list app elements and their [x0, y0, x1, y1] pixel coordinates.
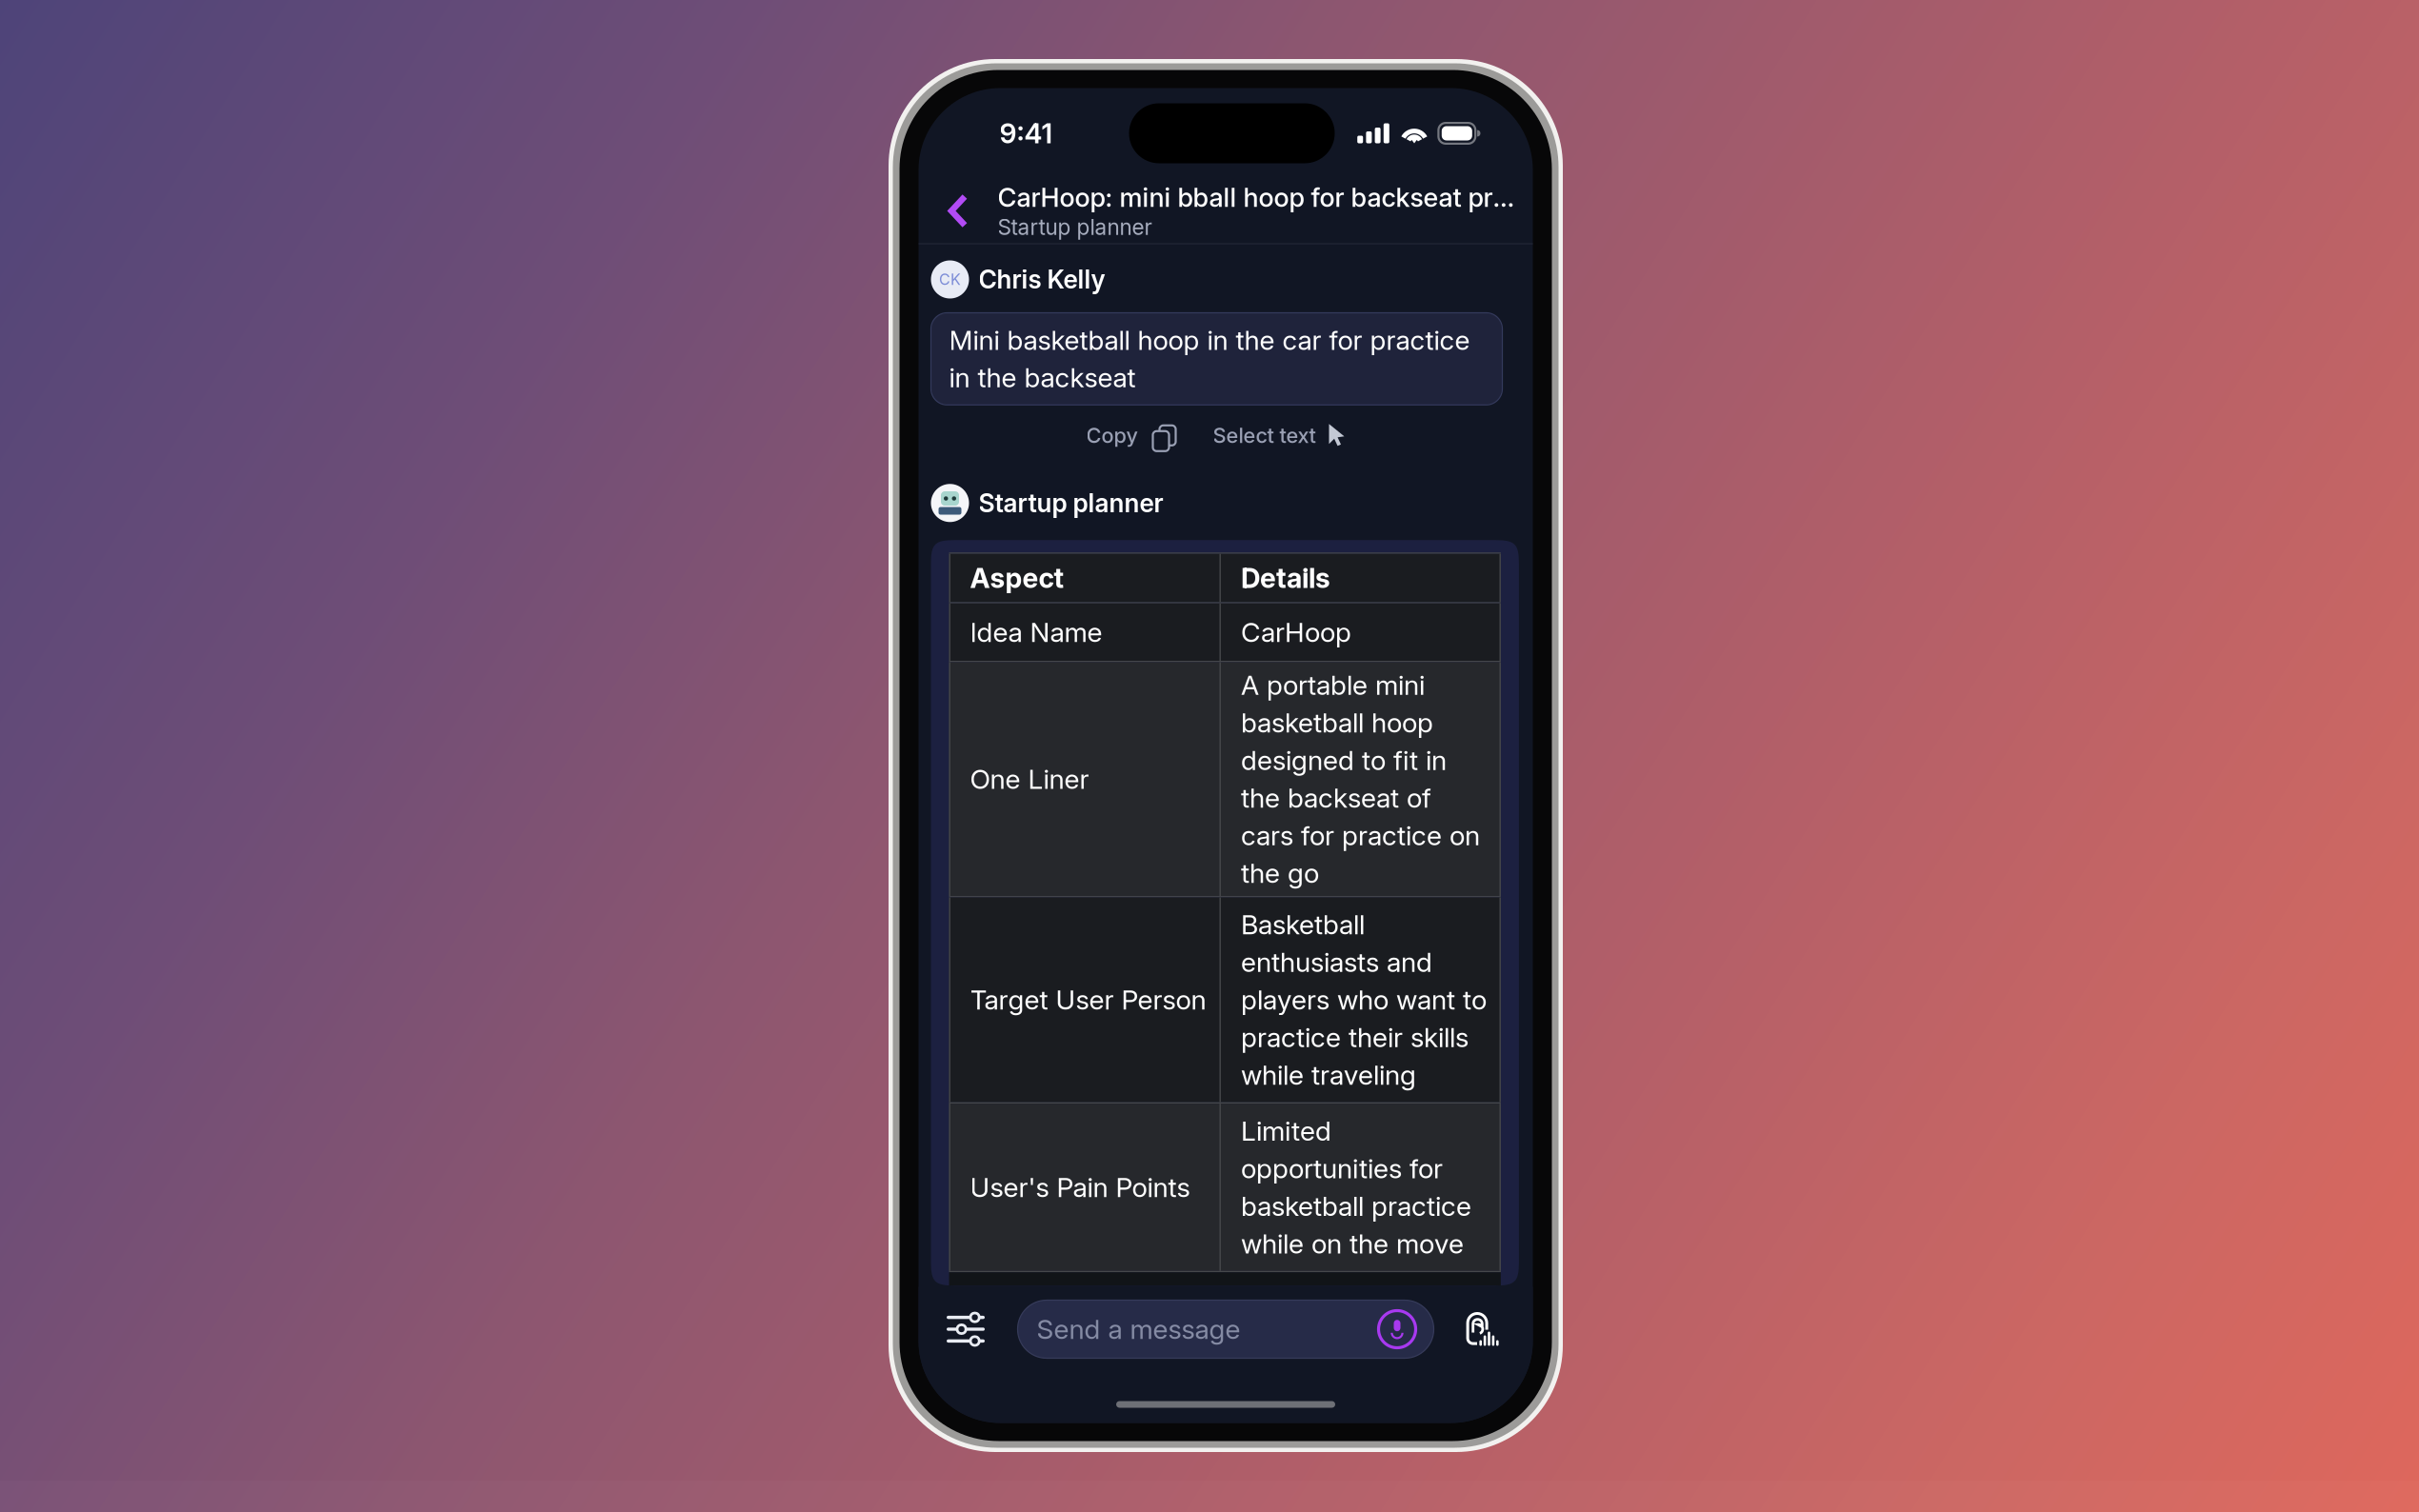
staticText: Select text: [1213, 423, 1316, 448]
staticText: Mini basketball hoop in the car for prac…: [949, 324, 1470, 394]
staticText: Send a message: [1037, 1313, 1240, 1345]
button[interactable]: Copy: [1086, 422, 1173, 449]
staticText: 9:41: [1000, 117, 1053, 150]
staticText: Details: [1241, 561, 1330, 595]
staticText: One Liner: [970, 763, 1089, 795]
button[interactable]: Message options: [932, 1294, 1000, 1364]
staticText: CarHoop: mini bball hoop for backseat pr…: [998, 182, 1523, 213]
button[interactable]: Send a message: [1018, 1300, 1434, 1358]
staticText: Copy: [1086, 423, 1138, 448]
staticText: Startup planner: [979, 488, 1163, 518]
staticText: Chris Kelly: [979, 264, 1105, 295]
staticText: Startup planner: [998, 214, 1152, 240]
button[interactable]: Select text: [1213, 423, 1346, 448]
staticText: Target User Person: [970, 984, 1206, 1016]
staticText: Aspect: [970, 561, 1064, 595]
staticText: CarHoop: [1241, 616, 1351, 648]
staticText: Idea Name: [970, 616, 1102, 648]
staticText: CK: [939, 270, 961, 289]
staticText: Basketball enthusiasts and players who w…: [1241, 908, 1487, 1091]
staticText: Limited opportunities for basketball pra…: [1241, 1115, 1471, 1260]
button[interactable]: Back: [919, 179, 998, 243]
button[interactable]: Listen: [1460, 1294, 1502, 1364]
staticText: User's Pain Points: [970, 1171, 1190, 1204]
staticText: A portable mini basketball hoop designed…: [1241, 669, 1480, 889]
